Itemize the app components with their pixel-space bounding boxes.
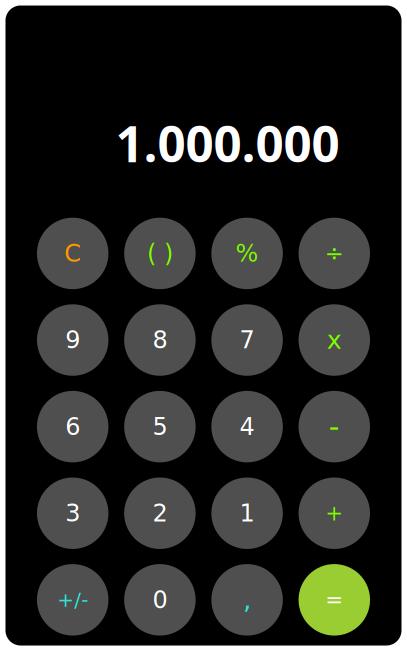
staticText: 9 xyxy=(65,326,80,354)
button[interactable]: ÷ xyxy=(299,218,370,289)
staticText: 6 xyxy=(65,413,80,441)
staticText: 1 xyxy=(240,499,255,527)
staticText: 4 xyxy=(240,413,255,441)
staticText: + xyxy=(325,501,343,526)
staticText: 0 xyxy=(152,586,167,614)
button[interactable]: 0 xyxy=(124,564,196,636)
staticText: 2 xyxy=(152,499,167,527)
button[interactable]: +/- xyxy=(37,564,108,636)
button[interactable]: 7 xyxy=(211,304,283,376)
staticText: 7 xyxy=(240,326,255,354)
staticText: , xyxy=(243,584,251,615)
staticText: C xyxy=(64,239,81,267)
button[interactable]: 9 xyxy=(37,304,108,376)
staticText: = xyxy=(325,587,343,612)
button[interactable]: 5 xyxy=(124,391,196,462)
button[interactable]: 1 xyxy=(211,477,283,549)
button[interactable]: ( ) xyxy=(124,218,196,289)
button[interactable]: 3 xyxy=(37,477,108,549)
staticText: 3 xyxy=(65,499,80,527)
button[interactable]: - xyxy=(299,391,370,462)
button[interactable]: + xyxy=(299,477,370,549)
staticText: 5 xyxy=(152,413,167,441)
staticText: 8 xyxy=(152,326,167,354)
button[interactable]: 8 xyxy=(124,304,196,376)
button[interactable]: = xyxy=(299,564,370,636)
button[interactable]: 2 xyxy=(124,477,196,549)
staticText: 1.000.000 xyxy=(115,109,339,177)
staticText: ( ) xyxy=(147,239,173,267)
staticText: % xyxy=(236,239,259,267)
button[interactable]: 6 xyxy=(37,391,108,462)
button[interactable]: , xyxy=(211,564,283,636)
button[interactable]: C xyxy=(37,218,108,289)
staticText: +/- xyxy=(57,588,88,611)
staticText: - xyxy=(329,410,340,444)
button[interactable]: % xyxy=(211,218,283,289)
staticText: x xyxy=(327,325,342,355)
button[interactable]: x xyxy=(299,304,370,376)
button[interactable]: 4 xyxy=(211,391,283,462)
staticText: ÷ xyxy=(325,240,344,267)
